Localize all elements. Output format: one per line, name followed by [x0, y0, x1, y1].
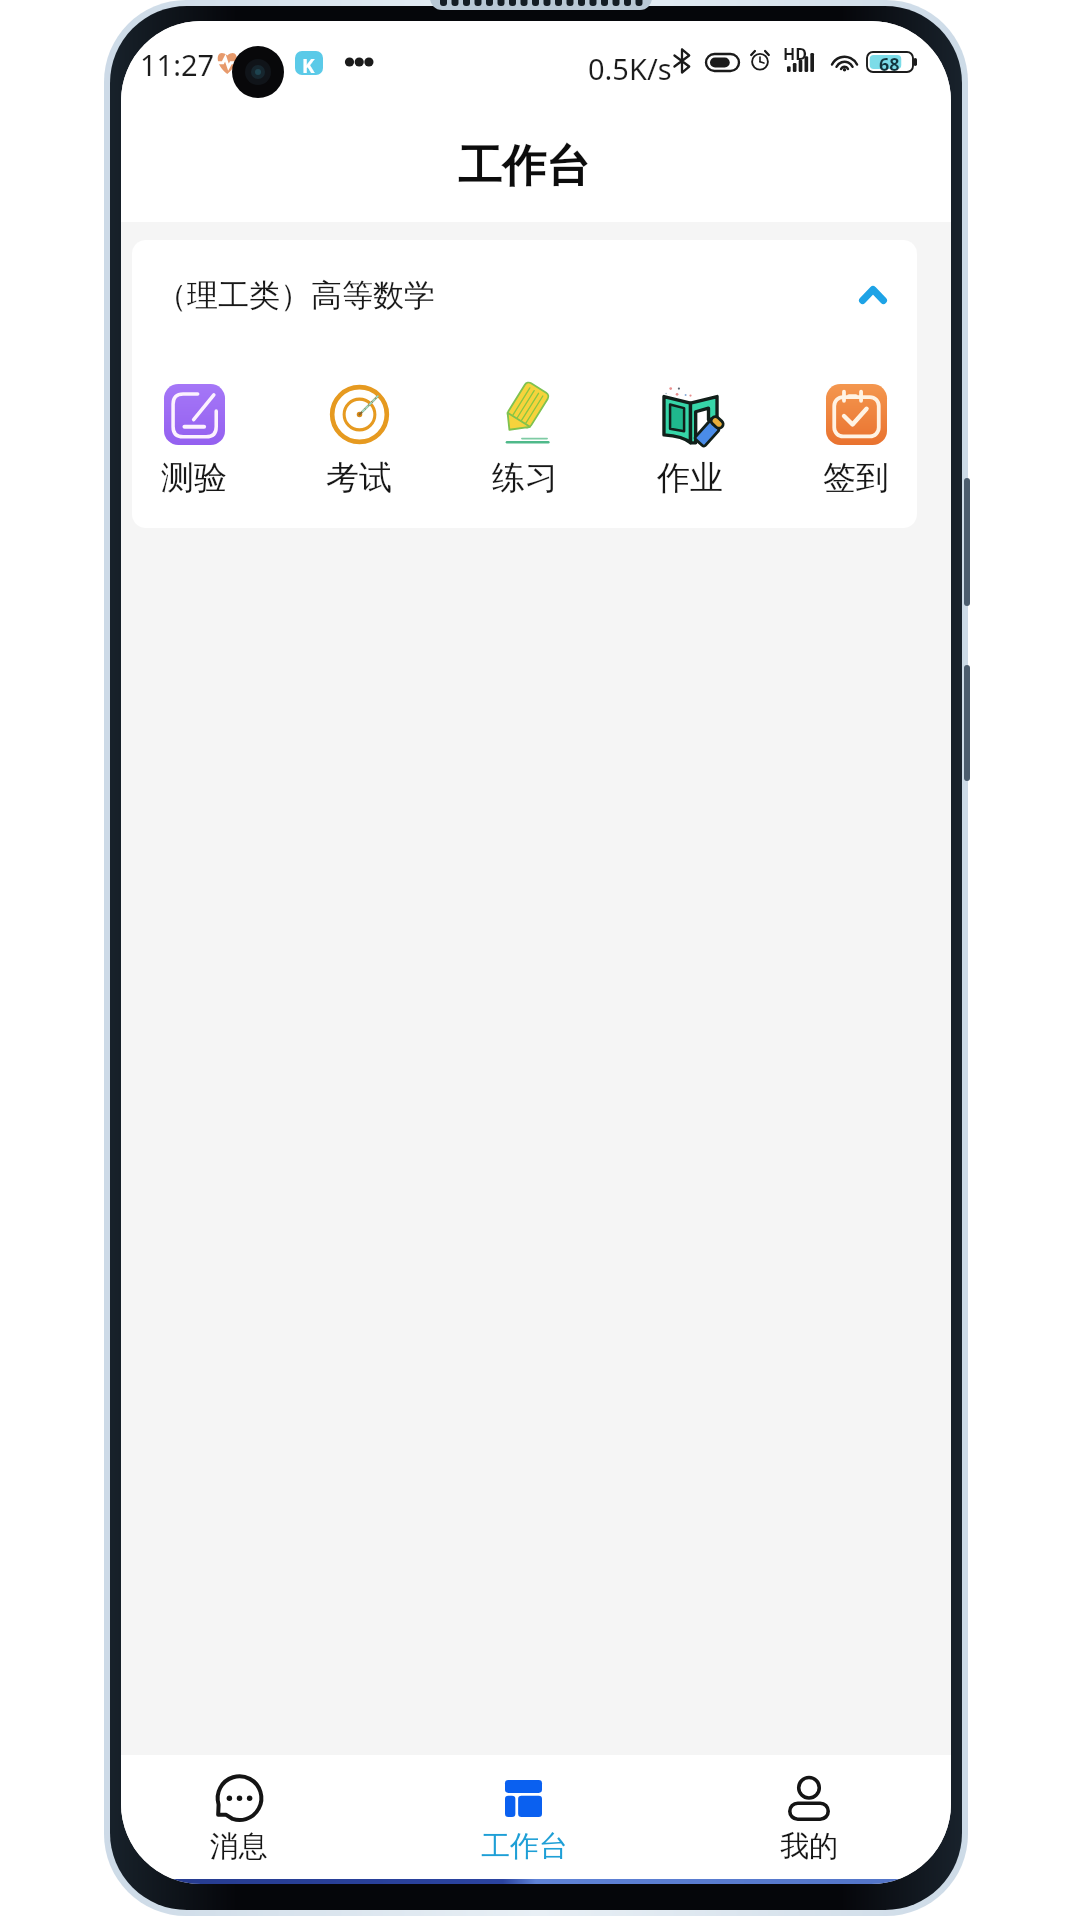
staticText: 0.5K/s [588, 49, 672, 88]
button[interactable]: 消息 [179, 1755, 299, 1879]
button[interactable]: （理工类）高等数学 [132, 240, 917, 350]
button[interactable]: 测验 [145, 370, 243, 500]
button[interactable]: 签到 [807, 370, 905, 500]
staticText: （理工类）高等数学 [156, 276, 435, 315]
staticText: 11:27 [140, 45, 215, 84]
staticText: 测验 [161, 457, 227, 499]
staticText: 68 [879, 52, 900, 72]
staticText: 签到 [823, 457, 889, 499]
button[interactable]: Collapse course panel [851, 273, 895, 317]
staticText: K [302, 53, 315, 79]
button[interactable]: 工作台 [464, 1755, 584, 1879]
staticText: HD [783, 43, 807, 65]
button[interactable]: 作业 [641, 370, 739, 500]
staticText: 作业 [657, 457, 723, 499]
button[interactable]: 考试 [310, 370, 408, 500]
staticText: 考试 [326, 457, 392, 499]
button[interactable]: 我的 [749, 1755, 869, 1879]
button[interactable]: 练习 [476, 370, 574, 500]
staticText: 工作台 [458, 139, 590, 194]
staticText: 练习 [492, 457, 558, 499]
staticText: 我的 [780, 1828, 838, 1865]
staticText: 工作台 [481, 1828, 568, 1865]
staticText: 消息 [210, 1828, 268, 1865]
